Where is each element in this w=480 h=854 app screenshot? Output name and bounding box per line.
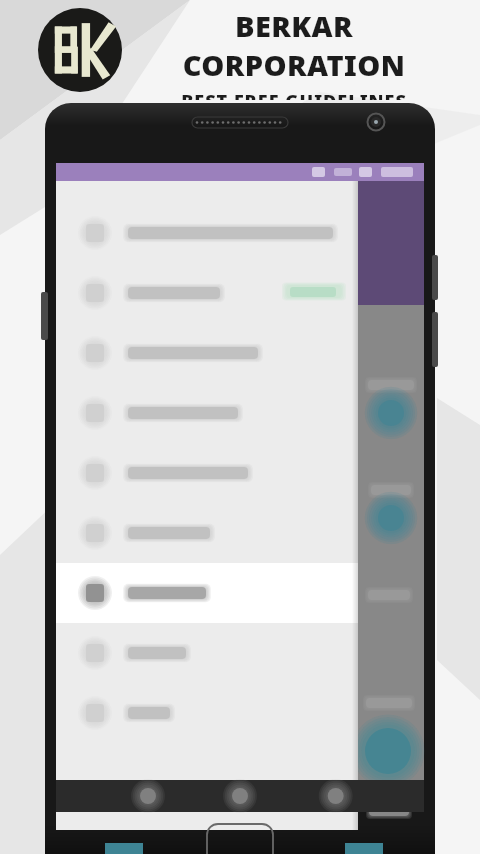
button[interactable]: Menu item [56,323,358,383]
button[interactable]: Menu item [56,683,358,743]
button[interactable]: Menu item [56,263,358,323]
button[interactable]: Menu item [56,503,358,563]
button[interactable]: Menu item [56,443,358,503]
button[interactable]: Menu item [56,623,358,683]
button[interactable]: Menu item [56,203,358,263]
button[interactable]: Menu item [56,181,358,830]
button[interactable]: Menu item [56,383,358,443]
button[interactable]: Menu item [56,563,358,623]
staticText: BERKAR CORPORATION [122,6,466,84]
staticText: BEST FREE GUIDELINES [181,89,407,100]
